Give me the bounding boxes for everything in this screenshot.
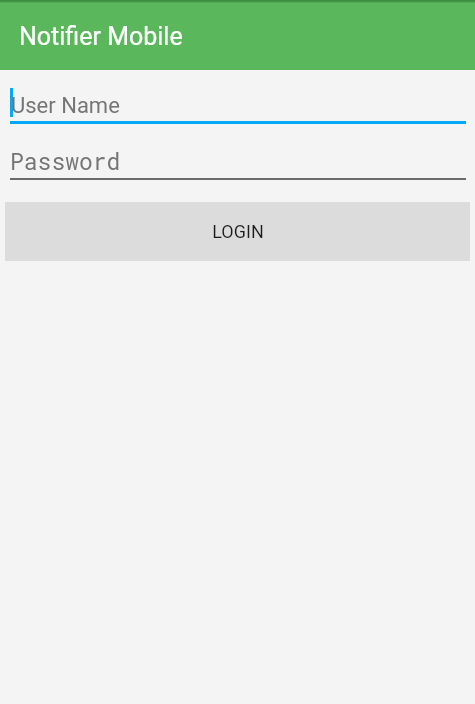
staticText: User Name	[11, 93, 120, 119]
button[interactable]: LOGIN	[5, 202, 470, 261]
staticText: LOGIN	[212, 221, 264, 242]
staticText: Password	[10, 146, 121, 176]
staticText: Notifier Mobile	[19, 22, 183, 51]
button[interactable]: User Name input field	[5, 80, 470, 125]
button[interactable]: Password input field	[5, 140, 470, 180]
